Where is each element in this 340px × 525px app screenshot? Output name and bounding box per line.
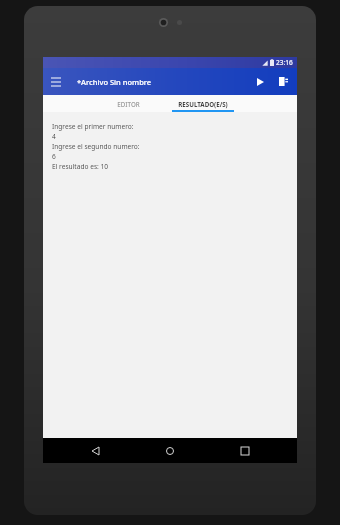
button[interactable]: Recent apps [222,438,268,463]
button[interactable]: RESULTADO(E/S) [161,95,245,112]
staticText: El resultado es: 10 [52,162,109,171]
staticText: RESULTADO(E/S) [178,100,228,108]
staticText: Ingrese el segundo numero: [52,142,140,151]
button[interactable]: Run [249,68,271,95]
staticText: *Archivo Sin nombre [77,77,249,87]
staticText: Ingrese el primer numero: [52,122,134,131]
button[interactable]: Terminal output [271,68,295,95]
button[interactable]: EDITOR [95,95,161,112]
button[interactable]: Home [147,438,193,463]
button[interactable]: Open navigation menu [43,68,69,95]
staticText: 23:16 [276,58,293,67]
staticText: 6 [52,152,56,161]
button[interactable]: Back [72,438,118,463]
staticText: EDITOR [117,100,140,108]
staticText: 4 [52,132,56,141]
